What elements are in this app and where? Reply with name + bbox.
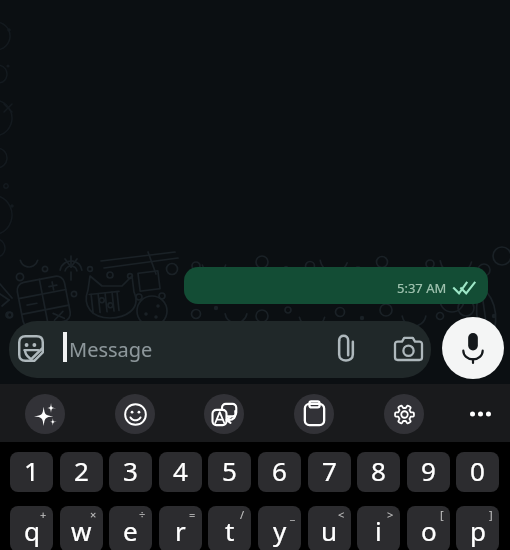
- staticText: 2: [74, 453, 89, 488]
- staticText: u: [321, 513, 338, 548]
- button[interactable]: [60, 452, 103, 492]
- button[interactable]: Stickers: [13, 330, 49, 366]
- button[interactable]: Clipboard: [294, 394, 334, 434]
- button[interactable]: [456, 452, 499, 492]
- button[interactable]: [184, 267, 488, 304]
- button[interactable]: [9, 321, 431, 378]
- button[interactable]: [258, 506, 301, 550]
- button[interactable]: [60, 506, 103, 550]
- staticText: +: [40, 507, 47, 522]
- staticText: 4: [173, 453, 188, 488]
- staticText: 5:37 AM: [397, 279, 447, 297]
- staticText: =: [189, 507, 196, 522]
- button[interactable]: Camera: [390, 330, 426, 366]
- button[interactable]: Emoji: [115, 394, 155, 434]
- staticText: Message: [69, 336, 153, 363]
- button[interactable]: More options: [460, 394, 500, 434]
- button[interactable]: Translate: [204, 394, 244, 434]
- staticText: e: [123, 513, 138, 548]
- button[interactable]: [456, 506, 499, 550]
- staticText: r: [175, 513, 186, 548]
- button[interactable]: [208, 452, 251, 492]
- staticText: 1: [24, 453, 39, 488]
- staticText: [: [440, 507, 444, 522]
- button[interactable]: [109, 452, 152, 492]
- button[interactable]: [407, 452, 450, 492]
- staticText: q: [24, 513, 40, 548]
- staticText: _: [290, 507, 295, 522]
- button[interactable]: [159, 452, 202, 492]
- staticText: 7: [322, 453, 337, 488]
- button[interactable]: [208, 506, 251, 550]
- button[interactable]: [407, 506, 450, 550]
- staticText: 3: [123, 453, 138, 488]
- staticText: w: [71, 513, 92, 548]
- staticText: 8: [371, 453, 386, 488]
- button[interactable]: Voice message: [442, 317, 504, 379]
- button[interactable]: [308, 452, 351, 492]
- button[interactable]: [10, 506, 53, 550]
- staticText: 0: [470, 453, 485, 488]
- staticText: ]: [489, 507, 493, 522]
- staticText: <: [338, 507, 345, 522]
- button[interactable]: Settings: [384, 394, 424, 434]
- button[interactable]: [109, 506, 152, 550]
- button[interactable]: AI writing help: [25, 394, 65, 434]
- staticText: o: [421, 513, 437, 548]
- button[interactable]: [258, 452, 301, 492]
- button[interactable]: [159, 506, 202, 550]
- staticText: p: [470, 513, 486, 548]
- staticText: /: [240, 507, 245, 522]
- staticText: 9: [421, 453, 436, 488]
- staticText: ×: [90, 507, 97, 522]
- staticText: ÷: [139, 507, 146, 522]
- button[interactable]: [357, 452, 400, 492]
- staticText: y: [273, 513, 287, 548]
- staticText: i: [375, 513, 382, 548]
- staticText: t: [225, 513, 235, 548]
- button[interactable]: [357, 506, 400, 550]
- staticText: >: [387, 507, 394, 522]
- button[interactable]: [308, 506, 351, 550]
- staticText: 6: [272, 453, 287, 488]
- staticText: 5: [222, 453, 237, 488]
- button[interactable]: [10, 452, 53, 492]
- button[interactable]: Attach: [328, 330, 364, 366]
